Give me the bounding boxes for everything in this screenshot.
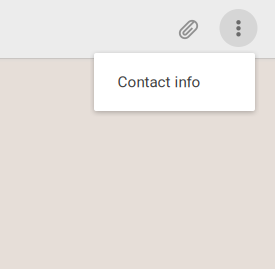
button[interactable]: More options	[215, 5, 261, 51]
button[interactable]: Attach	[168, 7, 208, 51]
staticText: Contact info	[117, 73, 200, 91]
button[interactable]: Contact info	[94, 53, 255, 111]
